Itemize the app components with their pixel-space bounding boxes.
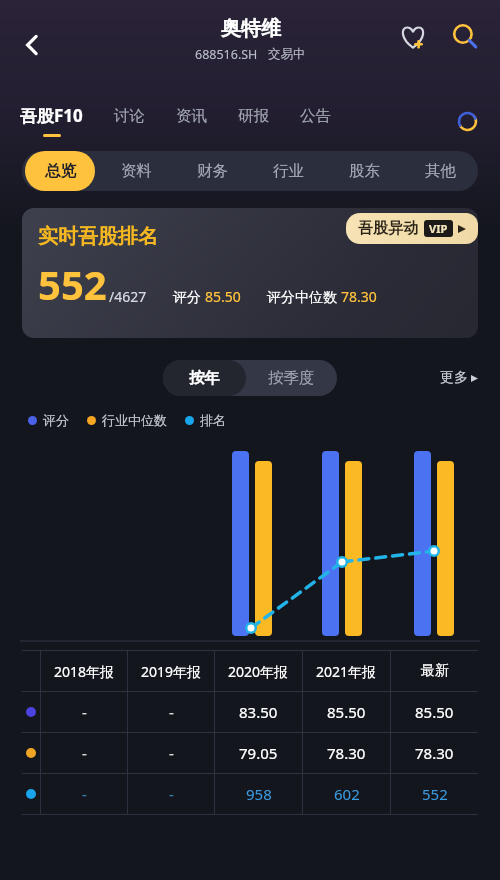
button[interactable]: 财务 [174,151,250,191]
staticText: - [82,743,87,763]
staticText: 资料 [121,161,152,181]
staticText: 78.30 [327,743,366,763]
staticText: 更多 [440,369,468,387]
button[interactable]: 更多 [440,369,478,387]
staticText: 奥特维 [221,16,281,41]
staticText: 其他 [425,161,456,181]
staticText: - [169,784,174,804]
button[interactable]: 资讯 [174,106,209,136]
button[interactable]: 股东 [326,151,402,191]
staticText: 评分中位数 [267,287,341,306]
staticText: 资讯 [176,106,207,126]
button[interactable]: 按季度 [246,360,337,396]
staticText: - [82,784,87,804]
staticText: 总览 [45,161,76,181]
button[interactable]: 讨论 [112,106,147,136]
staticText: 78.30 [415,743,454,763]
staticText: 实时吾股排名 [38,224,158,249]
staticText: 研报 [238,106,269,126]
staticText: 评分 [43,412,69,428]
button[interactable]: 按年 [163,360,246,396]
button[interactable]: Refresh [452,106,482,136]
staticText: 552 [422,784,448,804]
staticText: 财务 [197,161,228,181]
staticText: 排名 [200,412,226,428]
staticText: 85.50 [327,702,366,722]
button[interactable]: 行业 [250,151,326,191]
staticText: 2020年报 [228,662,289,681]
staticText: 行业中位数 [102,412,167,428]
staticText: 行业 [273,161,304,181]
staticText: 2021年报 [316,662,377,681]
staticText: 85.50 [415,702,454,722]
staticText: - [169,702,174,722]
button[interactable]: 研报 [236,106,271,136]
staticText: 958 [246,784,272,804]
button[interactable]: 实时吾股排名 [22,208,478,338]
staticText: 78.30 [341,287,377,306]
button[interactable]: Back [8,21,56,69]
staticText: /4627 [109,287,147,306]
button[interactable]: 吾股F10 [18,104,85,137]
staticText: 688516.SH [195,46,258,63]
button[interactable]: 资料 [98,151,174,191]
staticText: 602 [334,784,360,804]
button[interactable]: 公告 [298,106,333,136]
staticText: 交易中 [268,46,306,62]
staticText: VIP [429,221,448,236]
staticText: 股东 [349,161,380,181]
button[interactable]: 其他 [402,151,478,191]
staticText: 552 [38,257,107,311]
staticText: 吾股异动 [358,219,418,238]
staticText: 吾股F10 [20,104,83,127]
staticText: 2019年报 [141,662,202,681]
staticText: 79.05 [239,743,278,763]
staticText: 讨论 [114,106,145,126]
button[interactable]: Add to favorites [392,16,434,58]
staticText: - [169,743,174,763]
staticText: 2018年报 [54,662,115,681]
button[interactable]: 总览 [25,151,95,191]
staticText: 按季度 [268,368,315,388]
staticText: - [82,702,87,722]
staticText: 公告 [300,106,331,126]
staticText: 83.50 [239,702,278,722]
button[interactable]: Search [444,16,486,58]
staticText: 最新 [421,662,449,680]
staticText: 85.50 [205,287,241,306]
staticText: 按年 [189,368,220,388]
button[interactable]: 吾股异动 [346,213,478,244]
staticText: 评分 [173,287,205,306]
